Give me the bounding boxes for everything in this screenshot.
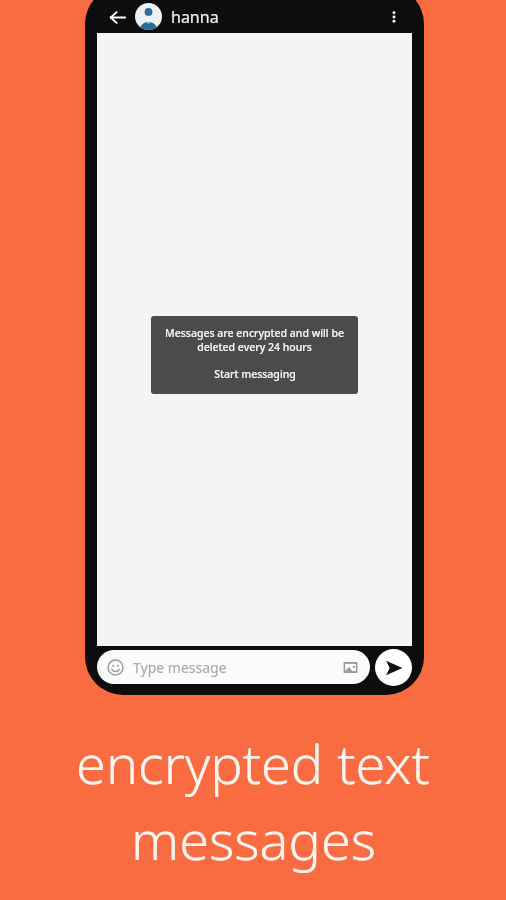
button[interactable]: Contact photo xyxy=(135,3,162,30)
staticText: encrypted text xyxy=(76,726,430,800)
button[interactable]: Back xyxy=(102,2,132,32)
button[interactable]: Send xyxy=(375,649,412,686)
staticText: Messages are encrypted and will be delet… xyxy=(159,326,350,354)
button[interactable]: Attach image xyxy=(339,656,361,678)
button[interactable]: Insert emoji xyxy=(97,650,370,684)
staticText: messages xyxy=(131,802,376,876)
button[interactable]: Messages are encrypted and will be delet… xyxy=(151,316,358,394)
staticText: Start messaging xyxy=(214,367,296,381)
staticText: Type message xyxy=(133,658,227,677)
staticText: hanna xyxy=(171,6,219,28)
button[interactable]: Insert emoji xyxy=(106,658,125,677)
button[interactable]: More options xyxy=(379,2,409,32)
